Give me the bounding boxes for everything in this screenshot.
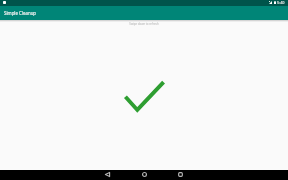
staticText: Simple Cleanup [4, 10, 37, 16]
staticText: Swipe down to refresh [129, 22, 159, 26]
staticText: 5:40 [277, 0, 285, 5]
button[interactable]: Home [126, 169, 162, 179]
button[interactable]: Back [89, 169, 125, 179]
button[interactable]: Recents [162, 169, 198, 179]
